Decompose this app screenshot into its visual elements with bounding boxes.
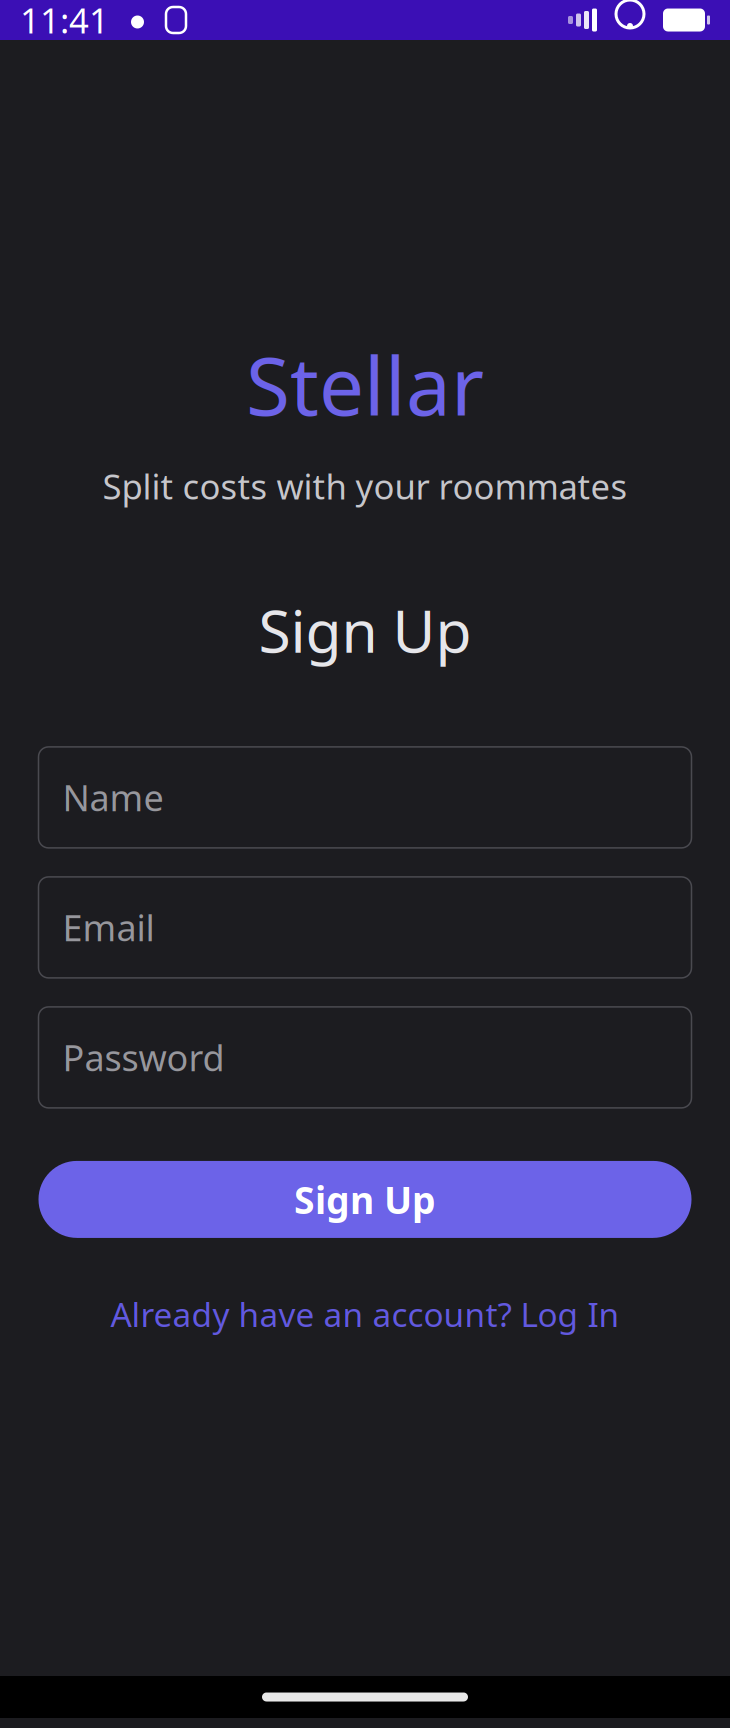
button[interactable]: Email	[38, 877, 691, 978]
staticText: 11:41	[20, 0, 109, 43]
staticText: Name	[62, 773, 163, 821]
staticText: Sign Up	[258, 591, 471, 669]
button[interactable]: Name	[38, 747, 691, 848]
button[interactable]: Already have an account? Log In	[98, 1284, 631, 1344]
staticText: Split costs with your roommates	[102, 463, 627, 509]
button[interactable]: Password	[38, 1007, 691, 1108]
staticText: Sign Up	[294, 1175, 436, 1224]
staticText: Stellar	[246, 330, 484, 439]
staticText: Already have an account? Log In	[110, 1292, 619, 1336]
button[interactable]: Sign Up	[38, 1161, 691, 1238]
staticText: Email	[62, 903, 154, 951]
staticText: Password	[62, 1033, 224, 1081]
